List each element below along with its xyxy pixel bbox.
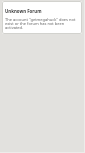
staticText: The account "getmegahuck" does not exist… [5,17,78,30]
staticText: Unknown Forum [5,8,42,14]
